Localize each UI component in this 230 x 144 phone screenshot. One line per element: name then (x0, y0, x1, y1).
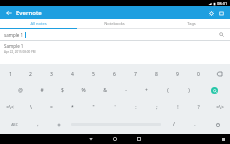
staticText: Evernote (16, 9, 42, 17)
staticText: 08:01 (217, 1, 228, 6)
button[interactable]: More options (216, 8, 226, 18)
staticText: / (173, 121, 175, 128)
staticText: \ (30, 104, 32, 111)
staticText: # (40, 87, 44, 94)
button[interactable]: 4 (62, 66, 83, 82)
button[interactable]: Back (83, 134, 99, 144)
staticText: " (92, 104, 95, 111)
staticText: $ (61, 87, 64, 94)
button[interactable]: Emoji (205, 116, 230, 133)
button[interactable]: 8 (146, 66, 167, 82)
staticText: =\< (6, 104, 14, 111)
staticText: 0 (197, 71, 200, 78)
staticText: + (145, 87, 148, 94)
button[interactable]: @ (10, 82, 31, 99)
button[interactable]: / (163, 116, 184, 133)
staticText: . (194, 121, 196, 128)
button[interactable]: Space (71, 120, 161, 129)
staticText: ) (188, 87, 190, 94)
staticText: 6 (113, 71, 116, 78)
button[interactable]: Search (217, 30, 226, 39)
button[interactable]: 0 (188, 66, 209, 82)
staticText: 7 (134, 71, 137, 78)
staticText: 9 (176, 71, 179, 78)
staticText: ; (156, 104, 158, 111)
button[interactable]: 6 (104, 66, 125, 82)
button[interactable]: * (62, 99, 83, 116)
staticText: , (37, 121, 39, 128)
staticText: @ (18, 87, 23, 94)
button[interactable]: Settings (206, 8, 216, 18)
staticText: % (81, 87, 86, 94)
staticText: ? (197, 104, 200, 111)
button[interactable]: 3 (41, 66, 62, 82)
staticText: 1 (9, 71, 12, 78)
button[interactable]: 5 (83, 66, 104, 82)
button[interactable]: 2 (20, 66, 41, 82)
button[interactable]: ) (178, 82, 199, 99)
button[interactable]: =\< (0, 99, 20, 116)
staticText: ( (167, 87, 169, 94)
button[interactable]: Recent apps (131, 134, 147, 144)
button[interactable]: # (31, 82, 52, 99)
staticText: & (103, 87, 107, 94)
staticText: : (135, 104, 137, 111)
staticText: Sample 1 (4, 43, 24, 49)
staticText: 3 (50, 71, 53, 78)
button[interactable]: Keyboard layout (219, 135, 227, 143)
staticText: 4 (71, 71, 74, 78)
staticText: All notes (30, 21, 47, 26)
staticText: 8 (155, 71, 158, 78)
staticText: Apr 22, 2015 08:00 PM (4, 50, 36, 54)
button[interactable]: Search (199, 82, 230, 99)
staticText: Notebooks (104, 21, 125, 26)
staticText: * (71, 104, 74, 111)
staticText: ! (177, 104, 179, 111)
staticText: - (125, 87, 127, 94)
button[interactable]: =\> (209, 99, 230, 116)
staticText: = (50, 104, 53, 111)
staticText: ABC (11, 122, 18, 127)
staticText: 2 (29, 71, 32, 78)
button[interactable]: Sample 1 (0, 41, 230, 56)
button[interactable]: + (136, 82, 157, 99)
staticText: 5 (92, 71, 95, 78)
button[interactable]: ; (146, 99, 167, 116)
button[interactable]: Navigate up (4, 8, 14, 18)
button[interactable]: ABC (0, 116, 28, 133)
button[interactable]: ( (157, 82, 178, 99)
button[interactable]: \ (20, 99, 41, 116)
staticText: Tags (187, 21, 196, 26)
button[interactable]: & (94, 82, 115, 99)
button[interactable]: 7 (125, 66, 146, 82)
button[interactable]: 9 (167, 66, 188, 82)
button[interactable]: sample 1 (0, 29, 230, 40)
button[interactable]: All notes (0, 19, 76, 28)
button[interactable]: Home (107, 134, 123, 144)
button[interactable]: Settings (48, 116, 69, 133)
staticText: =\> (216, 104, 224, 111)
button[interactable]: " (83, 99, 104, 116)
button[interactable]: ! (167, 99, 188, 116)
button[interactable]: = (41, 99, 62, 116)
staticText: ' (114, 104, 116, 111)
button[interactable]: $ (52, 82, 73, 99)
button[interactable]: ? (188, 99, 209, 116)
button[interactable]: Notebooks (76, 19, 153, 28)
button[interactable]: % (73, 82, 94, 99)
staticText: sample 1 (4, 32, 24, 38)
button[interactable]: Tags (153, 19, 230, 28)
button[interactable]: Backspace (209, 66, 230, 82)
button[interactable]: 1 (0, 66, 20, 82)
